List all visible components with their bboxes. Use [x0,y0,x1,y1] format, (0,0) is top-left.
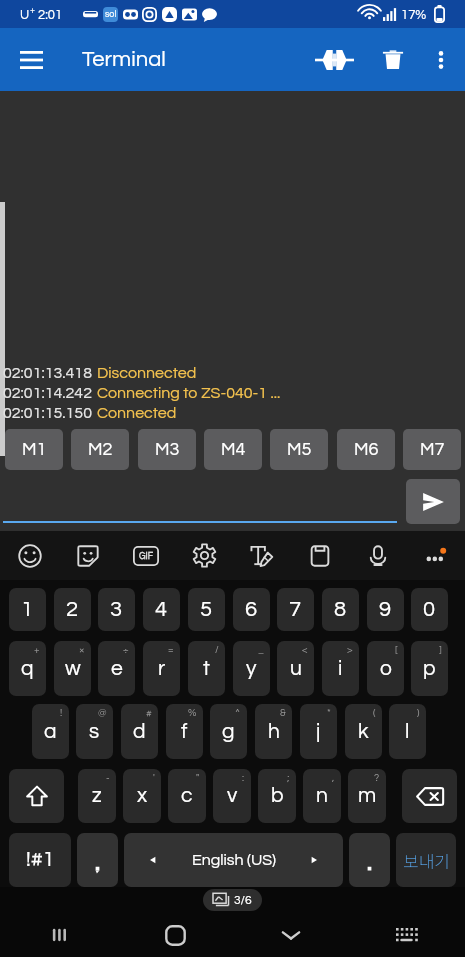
button[interactable]: f [166,704,203,759]
staticText: a [44,721,57,743]
staticText: M4 [221,440,246,459]
button[interactable]: Emoji [0,531,59,580]
staticText: ' [153,773,155,783]
button[interactable]: 5 [188,588,225,631]
button[interactable]: y [233,641,270,696]
button[interactable]: v [213,769,251,823]
button[interactable]: k [345,704,382,759]
button[interactable]: M3 [138,429,196,470]
staticText: ^ [235,708,241,718]
staticText: > [347,645,353,655]
button[interactable]: l [389,704,426,759]
button[interactable]: c [168,769,206,823]
button[interactable]: M4 [204,429,262,470]
button[interactable]: Handwriting [233,531,291,580]
staticText: 8 [334,598,347,621]
button[interactable]: 보내기 [396,833,456,887]
staticText: U [20,8,30,21]
staticText: v [227,785,238,807]
button[interactable]: 6 [233,588,270,631]
button[interactable]: n [303,769,341,823]
button[interactable]: a [32,704,69,759]
staticText: Connected [97,405,177,421]
button[interactable]: Send [406,479,460,524]
staticText: 2:01 [38,8,63,21]
button[interactable]: 3 [98,588,135,631]
button[interactable]: u [277,641,314,696]
staticText: + [30,6,35,15]
staticText: / [215,645,219,655]
button[interactable]: Voice input [349,531,407,580]
staticText: x [137,785,148,807]
button[interactable]: Clipboard [291,531,349,580]
staticText: < [302,645,308,655]
button[interactable]: p [411,641,448,696]
button[interactable]: 1 [9,588,46,631]
staticText: M2 [88,440,113,459]
staticText: 5 [200,598,213,621]
button[interactable]: x [123,769,161,823]
button[interactable]: M5 [270,429,328,470]
button[interactable]: 7 [277,588,314,631]
button[interactable]: j [300,704,337,759]
button[interactable]: z [78,769,116,823]
staticText: M3 [155,440,180,459]
button[interactable]: Home [117,913,233,957]
button[interactable]: h [255,704,292,759]
button[interactable]: 9 [367,588,404,631]
button[interactable]: 0 [411,588,448,631]
staticText: 4 [155,598,168,621]
button[interactable]: w [54,641,91,696]
button[interactable]: r [143,641,180,696]
staticText: [ [395,645,398,655]
staticText: , [332,773,335,783]
button[interactable]: English (US) [124,833,343,887]
button[interactable]: Stickers [59,531,117,580]
button[interactable]: Change keyboard [349,913,465,957]
button[interactable]: Backspace [402,769,457,823]
button[interactable] [349,833,390,887]
button[interactable]: 4 [143,588,180,631]
button[interactable]: GIF [117,531,175,580]
button[interactable]: M7 [403,429,461,470]
staticText: & [280,708,286,718]
button[interactable]: m [348,769,386,823]
button[interactable]: 3/6 [213,892,252,908]
button[interactable] [77,833,118,887]
button[interactable]: M6 [337,429,395,470]
button[interactable]: s [76,704,113,759]
button[interactable]: 8 [322,588,359,631]
staticText: ? [374,773,380,783]
staticText: c [181,785,193,807]
button[interactable]: 2 [54,588,91,631]
button[interactable]: g [210,704,247,759]
button[interactable]: Recents [0,913,117,957]
button[interactable]: i [322,641,359,696]
button[interactable]: M1 [5,429,63,470]
staticText: l [405,721,410,743]
button[interactable]: Connect device [310,36,358,84]
staticText: 3/6 [234,894,252,906]
button[interactable]: q [9,641,46,696]
button[interactable]: More options [417,36,465,84]
button[interactable]: M2 [71,429,129,470]
button[interactable]: Hide keyboard [233,913,349,957]
button[interactable]: e [98,641,135,696]
button[interactable]: Open navigation menu [7,36,55,84]
button[interactable]: t [188,641,225,696]
staticText: o [380,658,392,680]
button[interactable]: Clear terminal [369,36,417,84]
button[interactable]: Settings [175,531,233,580]
staticText: 보내기 [403,848,450,873]
staticText: " [196,773,200,783]
button[interactable]: o [367,641,404,696]
button[interactable]: b [258,769,296,823]
button[interactable]: !#1 [9,833,71,887]
staticText: m [358,785,377,807]
button[interactable]: Shift [9,769,64,823]
button[interactable]: More [407,531,465,580]
staticText: u [290,658,302,680]
staticText: * [327,708,331,718]
button[interactable]: d [121,704,158,759]
staticText: z [92,785,102,807]
